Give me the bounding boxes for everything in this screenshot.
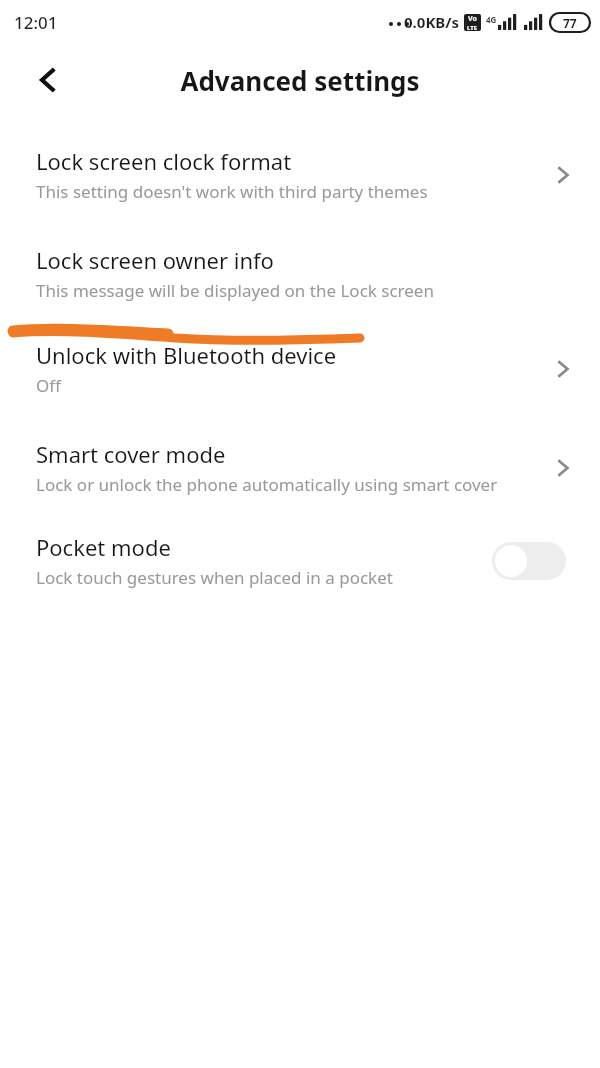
- staticText: Vo: [468, 14, 477, 24]
- staticText: Unlock with Bluetooth device: [36, 340, 337, 370]
- button[interactable]: Smart cover mode: [0, 439, 600, 496]
- staticText: Lock screen clock format: [36, 146, 292, 176]
- staticText: Lock screen owner info: [36, 245, 274, 275]
- button[interactable]: Lock screen owner info: [0, 245, 600, 302]
- button[interactable]: Pocket mode: [0, 532, 600, 589]
- staticText: This setting doesn't work with third par…: [36, 180, 546, 203]
- button[interactable]: Lock screen clock format: [0, 146, 600, 203]
- staticText: 77: [563, 15, 577, 31]
- staticText: Smart cover mode: [36, 439, 226, 469]
- staticText: 12:01: [14, 11, 58, 34]
- staticText: 0.0KB/s: [404, 12, 460, 32]
- button[interactable]: Pocket mode toggle: [492, 542, 566, 580]
- staticText: LTE: [467, 24, 478, 31]
- staticText: 4G: [486, 14, 497, 25]
- button[interactable]: Unlock with Bluetooth device: [0, 340, 600, 397]
- staticText: Lock or unlock the phone automatically u…: [36, 473, 526, 496]
- staticText: Advanced settings: [180, 63, 420, 98]
- staticText: Off: [36, 374, 546, 397]
- staticText: This message will be displayed on the Lo…: [36, 279, 546, 302]
- staticText: Lock touch gestures when placed in a poc…: [36, 566, 393, 589]
- button[interactable]: Back: [22, 54, 74, 106]
- staticText: Pocket mode: [36, 532, 171, 562]
